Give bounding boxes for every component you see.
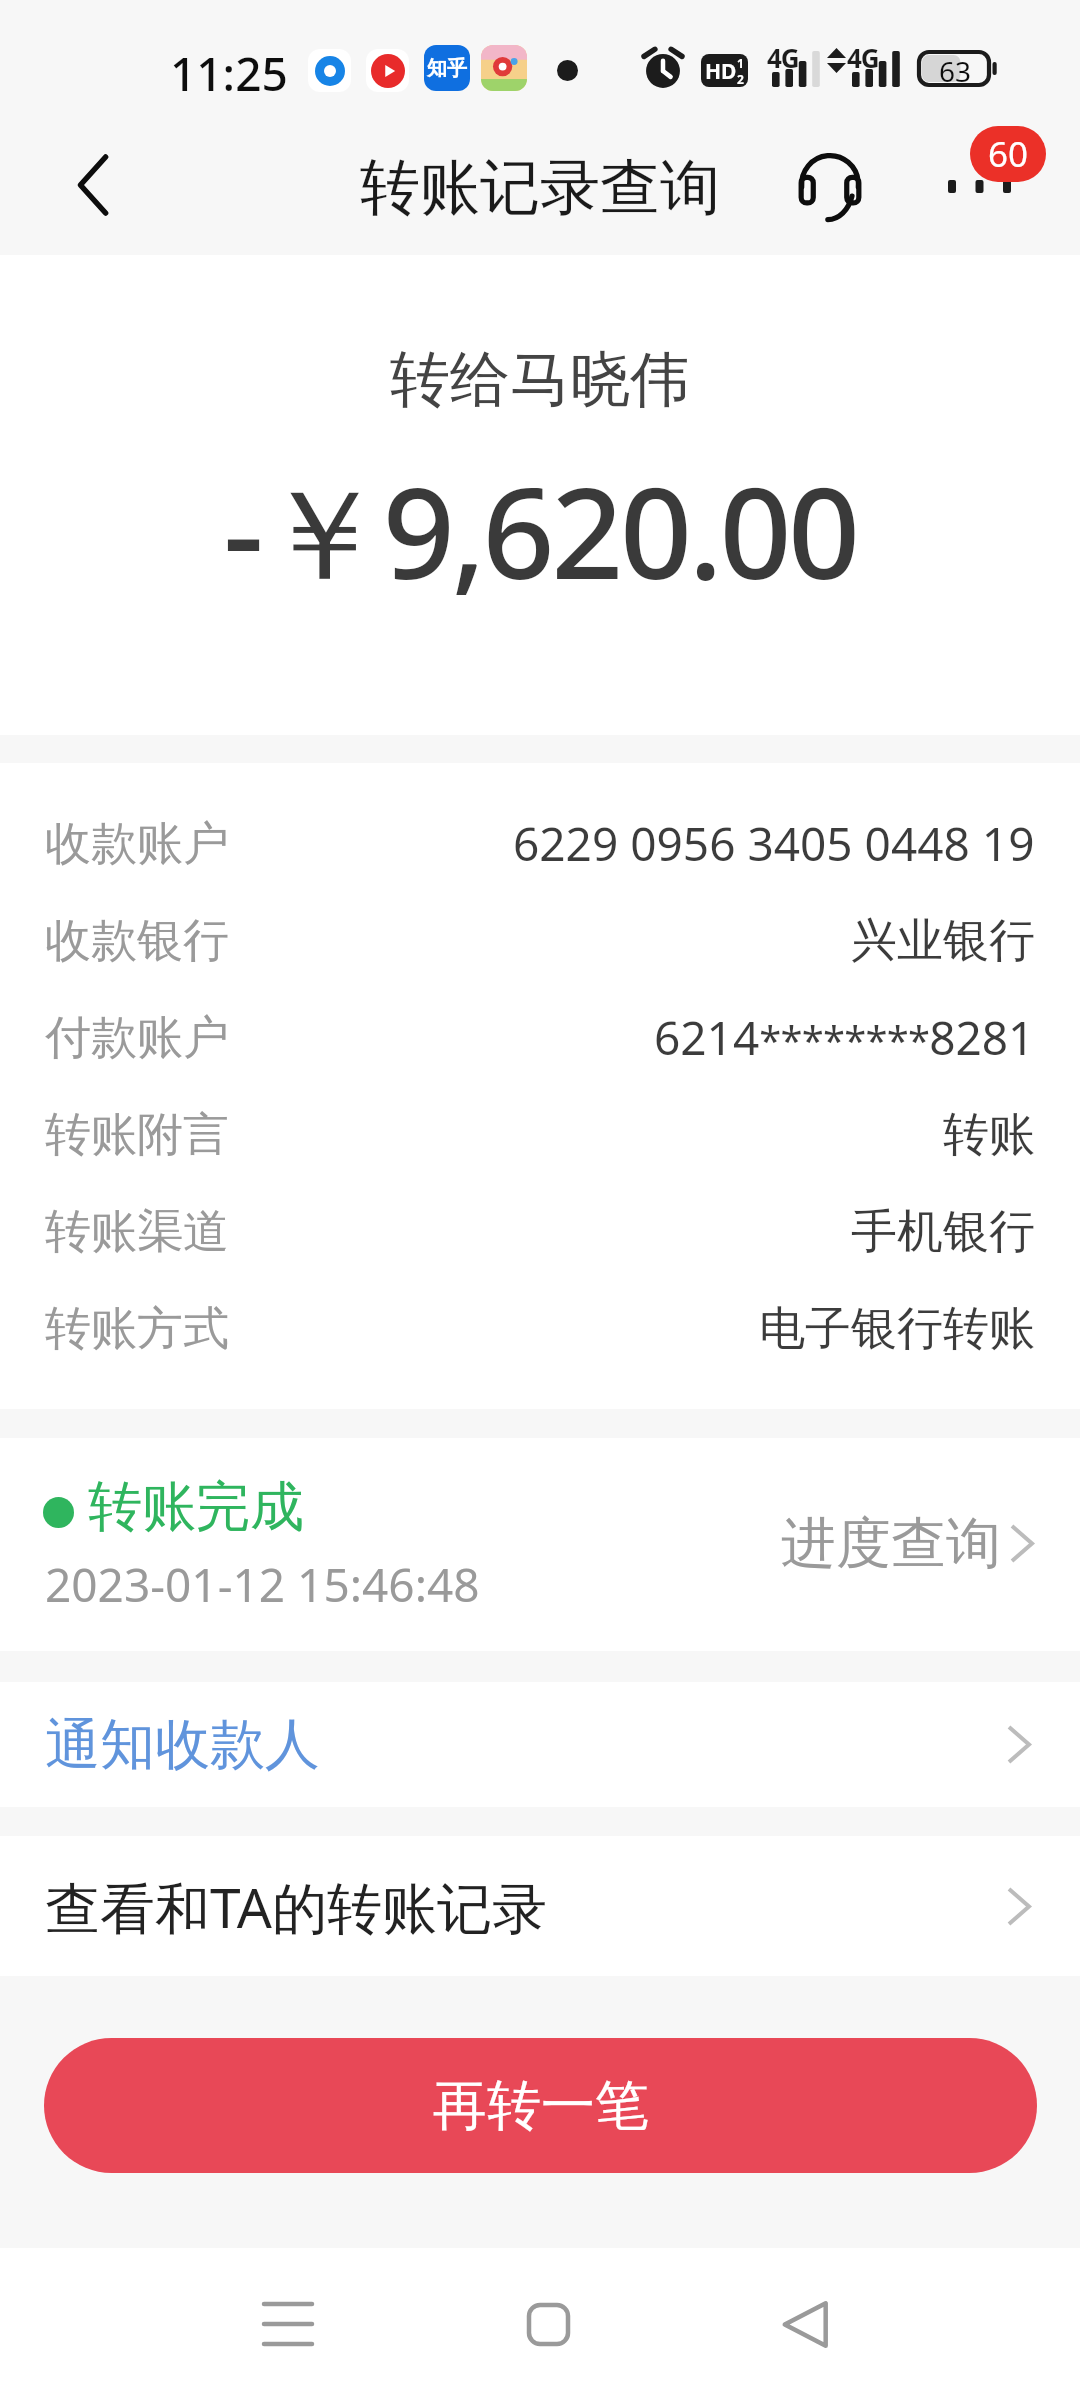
button[interactable]: Home (493, 2269, 603, 2379)
staticText: 4G (847, 40, 879, 75)
staticText: 查看和TA的转账记录 (45, 1869, 547, 1944)
staticText: -￥9,620.00 (0, 444, 1080, 616)
staticText: 63 (938, 52, 972, 90)
button[interactable]: 通知收款人 (0, 1682, 1080, 1807)
staticText: 转账记录查询 (0, 150, 1080, 226)
staticText: 转账渠道 (45, 1203, 229, 1261)
staticText: 转给马晓伟 (0, 342, 1080, 418)
staticText: 6229 0956 3405 0448 19 (513, 812, 1035, 875)
staticText: 转账附言 (45, 1106, 229, 1164)
button[interactable]: Back (49, 141, 137, 229)
staticText: 知乎 (427, 56, 467, 81)
staticText: 电子银行转账 (759, 1300, 1035, 1358)
staticText: HD (705, 57, 737, 86)
button[interactable]: More options (930, 135, 1030, 235)
staticText: 4G (767, 40, 799, 75)
button[interactable]: 查看和TA的转账记录 (0, 1836, 1080, 1976)
button[interactable]: Customer service (786, 141, 874, 229)
staticText: 转账完成 (88, 1473, 304, 1541)
staticText: 转账 (943, 1106, 1035, 1164)
staticText: 2023-01-12 15:46:48 (45, 1553, 480, 1616)
staticText: 1 (737, 55, 744, 71)
staticText: 收款账户 (45, 815, 229, 873)
button[interactable]: 进度查询 (781, 1499, 1035, 1588)
button[interactable]: Back (750, 2269, 860, 2379)
staticText: 通知收款人 (45, 1710, 320, 1779)
staticText: 60 (988, 130, 1029, 178)
staticText: 兴业银行 (851, 912, 1035, 970)
button[interactable]: 再转一笔 (44, 2038, 1037, 2173)
button[interactable]: Recent apps (233, 2269, 343, 2379)
staticText: 再转一笔 (433, 2072, 649, 2140)
staticText: 2 (737, 71, 744, 87)
staticText: 手机银行 (851, 1203, 1035, 1261)
staticText: 进度查询 (781, 1509, 1001, 1578)
staticText: 转账方式 (45, 1300, 229, 1358)
staticText: 付款账户 (45, 1009, 229, 1067)
staticText: 11:25 (170, 42, 288, 105)
staticText: 6214********8281 (654, 1006, 1035, 1069)
staticText: 收款银行 (45, 912, 229, 970)
